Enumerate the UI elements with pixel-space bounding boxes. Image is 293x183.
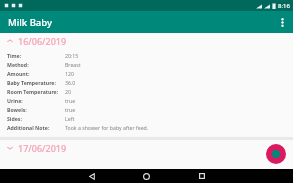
- button[interactable]: 17/06/2019: [0, 140, 293, 156]
- button[interactable]: Time:: [0, 49, 293, 137]
- staticText: Baby Temperature:: [7, 79, 56, 86]
- staticText: Amount:: [7, 70, 30, 77]
- button[interactable]: Home: [119, 169, 174, 183]
- staticText: true: [65, 106, 76, 113]
- staticText: 20:15: [65, 52, 79, 59]
- staticText: Left: [65, 115, 75, 122]
- button[interactable]: More options: [271, 11, 293, 33]
- button[interactable]: 16/06/2019: [0, 33, 293, 49]
- staticText: 17/06/2019: [18, 142, 67, 154]
- staticText: 20: [65, 88, 71, 95]
- staticText: 120: [65, 70, 74, 77]
- staticText: Breast: [65, 61, 81, 68]
- staticText: Room Temperature:: [7, 88, 59, 95]
- staticText: Time:: [7, 52, 22, 59]
- staticText: 16/06/2019: [18, 35, 67, 47]
- staticText: Additional Note:: [7, 124, 50, 131]
- button[interactable]: Recents: [174, 169, 229, 183]
- staticText: Urine:: [7, 97, 23, 104]
- staticText: Method:: [7, 61, 29, 68]
- staticText: true: [65, 97, 76, 104]
- staticText: Sides:: [7, 115, 22, 122]
- button[interactable]: Back: [64, 169, 119, 183]
- staticText: Bowels:: [7, 106, 27, 113]
- staticText: Took a shower for baby after feed.: [65, 124, 149, 131]
- staticText: Milk Baby: [8, 16, 52, 29]
- staticText: 8:16: [278, 2, 290, 10]
- button[interactable]: Add entry: [266, 144, 286, 164]
- staticText: 36.0: [65, 79, 76, 86]
